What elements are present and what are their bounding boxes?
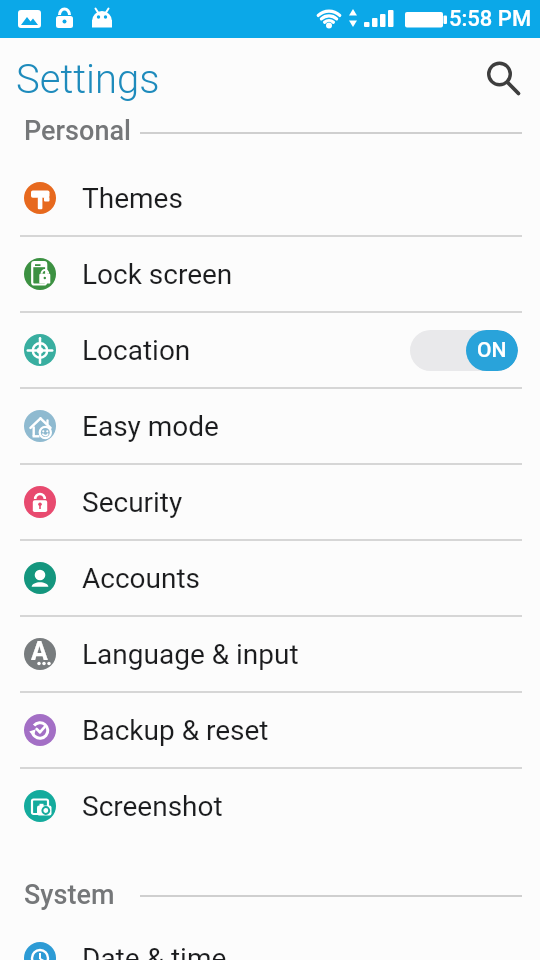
button[interactable]: A — [0, 616, 540, 692]
staticText: A — [31, 637, 48, 666]
staticText: System — [24, 879, 115, 911]
staticText: Location — [82, 334, 191, 367]
button[interactable]: Security — [0, 464, 540, 540]
staticText: Date & time — [82, 942, 227, 960]
button[interactable]: ON — [410, 330, 518, 371]
button[interactable]: Themes — [0, 160, 540, 236]
staticText: Security — [82, 486, 183, 519]
staticText: Themes — [82, 182, 183, 215]
button[interactable]: Easy mode — [0, 388, 540, 464]
button[interactable]: Accounts — [0, 540, 540, 616]
staticText: Backup & reset — [82, 714, 269, 747]
staticText: Lock screen — [82, 258, 233, 291]
button[interactable]: Location — [0, 312, 540, 388]
staticText: 5:58 PM — [449, 6, 532, 32]
button[interactable]: Date & time — [0, 920, 540, 960]
staticText: Language & input — [82, 638, 299, 671]
staticText: Personal — [24, 115, 131, 147]
staticText: ON — [477, 338, 507, 363]
button[interactable] — [480, 56, 524, 96]
staticText: Screenshot — [82, 790, 223, 823]
button[interactable]: Lock screen — [0, 236, 540, 312]
staticText: Easy mode — [82, 410, 219, 443]
staticText: Settings — [16, 56, 160, 103]
button[interactable]: Backup & reset — [0, 692, 540, 768]
staticText: Accounts — [82, 562, 201, 595]
button[interactable]: Screenshot — [0, 768, 540, 844]
